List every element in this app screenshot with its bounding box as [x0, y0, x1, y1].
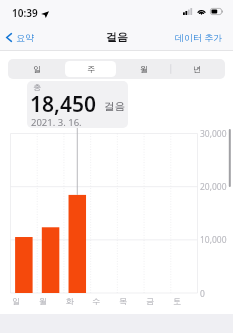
- staticText: 수: [92, 296, 100, 306]
- staticText: 일: [12, 296, 20, 306]
- staticText: 걸음: [104, 100, 125, 113]
- staticText: 10,000: [200, 234, 227, 246]
- staticText: 일: [33, 64, 41, 74]
- staticText: 18,450: [30, 90, 96, 119]
- staticText: 화: [66, 296, 74, 306]
- staticText: 월: [140, 64, 148, 74]
- staticText: 토: [173, 296, 181, 306]
- staticText: 10:39: [12, 6, 38, 20]
- button[interactable]: 일: [11, 61, 63, 77]
- button[interactable]: 주: [65, 61, 116, 77]
- button[interactable]: 월: [118, 61, 169, 77]
- staticText: 금: [146, 296, 154, 306]
- staticText: 년: [193, 64, 201, 74]
- staticText: 월: [39, 296, 47, 306]
- staticText: 2021. 3. 16.: [31, 116, 82, 128]
- staticText: 0: [200, 288, 205, 300]
- staticText: 30,000: [200, 128, 227, 140]
- button[interactable]: 년: [171, 61, 222, 77]
- button[interactable]: 데이터 추가: [171, 26, 227, 48]
- staticText: 요약: [16, 32, 34, 43]
- staticText: 20,000: [200, 181, 227, 193]
- staticText: 걸음: [106, 30, 128, 44]
- staticText: 목: [119, 296, 127, 306]
- button[interactable]: 요약: [4, 26, 38, 48]
- staticText: 데이터 추가: [175, 31, 223, 43]
- staticText: 주: [87, 64, 95, 74]
- staticText: 총: [33, 82, 41, 92]
